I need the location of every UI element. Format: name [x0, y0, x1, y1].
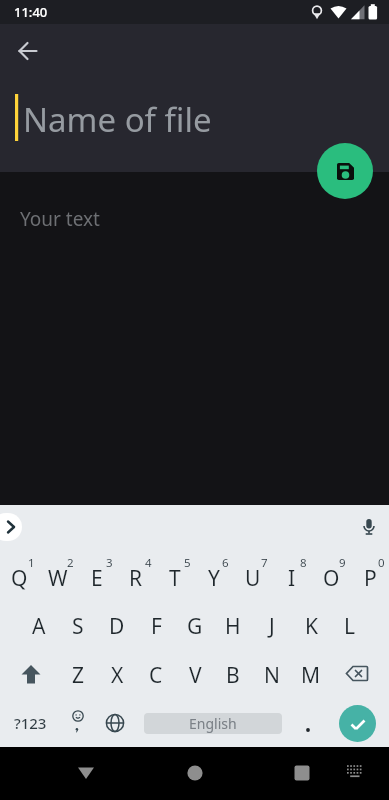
staticText: Q: [11, 564, 28, 593]
staticText: A: [32, 612, 46, 641]
button[interactable]: G: [176, 603, 214, 649]
button[interactable]: Y: [195, 555, 233, 601]
staticText: P: [364, 564, 377, 593]
button[interactable]: T: [156, 555, 194, 601]
staticText: N: [264, 661, 280, 690]
button[interactable]: F: [137, 603, 175, 649]
staticText: Z: [72, 661, 85, 690]
button[interactable]: [96, 700, 134, 746]
button[interactable]: Q: [0, 555, 38, 601]
button[interactable]: [355, 513, 383, 541]
button[interactable]: J: [253, 603, 291, 649]
button[interactable]: ?123: [2, 700, 58, 746]
button[interactable]: [289, 700, 327, 746]
button[interactable]: X: [98, 652, 136, 698]
button[interactable]: W: [39, 555, 77, 601]
staticText: 7: [261, 555, 268, 571]
staticText: 11:40: [14, 3, 48, 21]
button[interactable]: [331, 652, 383, 698]
staticText: 4: [145, 555, 152, 571]
staticText: 9: [339, 555, 346, 571]
staticText: D: [109, 612, 125, 641]
button[interactable]: A: [20, 603, 58, 649]
staticText: K: [305, 612, 318, 641]
button[interactable]: [339, 705, 376, 742]
button[interactable]: H: [214, 603, 252, 649]
staticText: H: [225, 612, 241, 641]
staticText: ?123: [14, 713, 47, 733]
staticText: 0: [378, 555, 385, 571]
button[interactable]: [171, 749, 219, 797]
staticText: English: [189, 714, 237, 733]
button[interactable]: V: [176, 652, 214, 698]
staticText: Name of file: [23, 97, 212, 142]
staticText: J: [269, 612, 275, 641]
staticText: M: [301, 661, 321, 690]
staticText: Your text: [20, 206, 100, 232]
staticText: E: [91, 564, 103, 593]
staticText: 6: [222, 555, 229, 571]
button[interactable]: U: [234, 555, 272, 601]
staticText: G: [187, 612, 203, 641]
button[interactable]: O: [312, 555, 350, 601]
button[interactable]: R: [117, 555, 155, 601]
staticText: V: [189, 661, 202, 690]
button[interactable]: [62, 749, 110, 797]
staticText: X: [111, 661, 124, 690]
staticText: 3: [106, 555, 113, 571]
button[interactable]: [278, 749, 326, 797]
staticText: C: [149, 661, 163, 690]
button[interactable]: I: [273, 555, 311, 601]
button[interactable]: S: [59, 603, 97, 649]
staticText: Y: [208, 564, 220, 593]
staticText: O: [323, 564, 340, 593]
button[interactable]: N: [253, 652, 291, 698]
button[interactable]: Name of file: [0, 90, 389, 148]
button[interactable]: P: [351, 555, 389, 601]
button[interactable]: L: [331, 603, 369, 649]
button[interactable]: [317, 143, 373, 199]
staticText: 1: [28, 555, 35, 571]
staticText: S: [72, 612, 84, 641]
button[interactable]: [58, 700, 96, 746]
button[interactable]: Z: [59, 652, 97, 698]
staticText: F: [151, 612, 162, 641]
staticText: R: [129, 564, 143, 593]
button[interactable]: [0, 513, 22, 541]
button[interactable]: B: [214, 652, 252, 698]
button[interactable]: [5, 652, 57, 698]
staticText: 2: [67, 555, 74, 571]
button[interactable]: M: [292, 652, 330, 698]
button[interactable]: C: [137, 652, 175, 698]
button[interactable]: [332, 749, 376, 793]
staticText: B: [226, 661, 240, 690]
button[interactable]: [6, 29, 50, 73]
staticText: I: [288, 564, 296, 593]
button[interactable]: E: [78, 555, 116, 601]
button[interactable]: D: [98, 603, 136, 649]
staticText: W: [48, 564, 68, 593]
staticText: 8: [300, 555, 307, 571]
staticText: U: [245, 564, 261, 593]
staticText: L: [344, 612, 356, 641]
button[interactable]: English: [144, 713, 282, 734]
staticText: T: [169, 564, 181, 593]
staticText: 5: [184, 555, 191, 571]
button[interactable]: K: [292, 603, 330, 649]
